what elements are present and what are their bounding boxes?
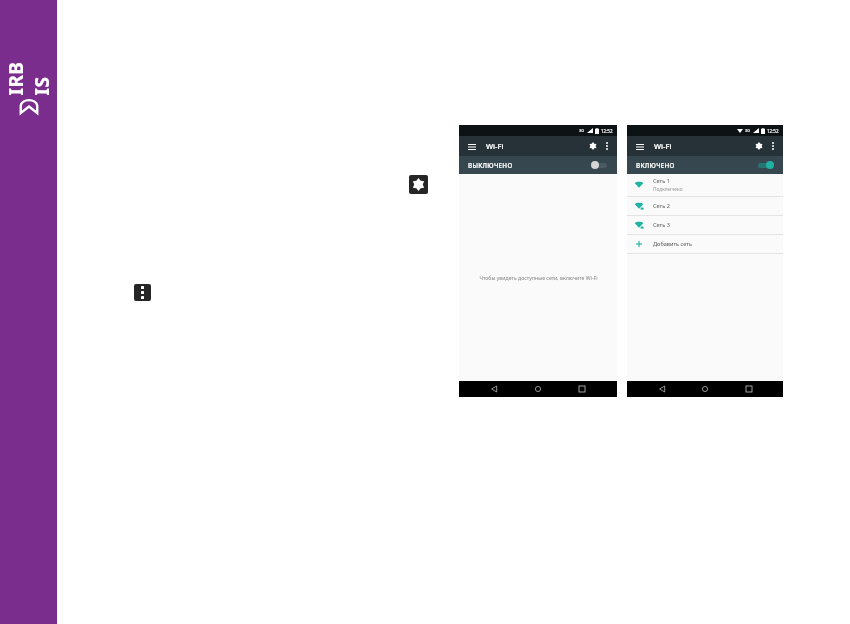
button[interactable]: Home (696, 381, 714, 397)
button[interactable]: Сеть 2 (627, 197, 783, 215)
button[interactable]: Back (653, 381, 671, 397)
button[interactable]: Open navigation drawer (465, 140, 478, 153)
button[interactable]: Recent apps (573, 381, 591, 397)
staticText: Wi-Fi (654, 141, 672, 151)
staticText: Сеть 3 (653, 221, 670, 229)
staticText: 12:52 (767, 128, 779, 134)
staticText: ВЫКЛЮЧЕНО (468, 161, 513, 170)
button[interactable]: Recent apps (740, 381, 758, 397)
staticText: Добавить сеть (653, 240, 692, 248)
button[interactable]: Back (485, 381, 503, 397)
button[interactable]: Добавить сеть (627, 235, 783, 253)
staticText: Wi-Fi (486, 141, 504, 151)
button[interactable]: Advanced Wi-Fi settings (586, 139, 600, 153)
button[interactable]: Home (529, 381, 547, 397)
button[interactable]: Сеть 3 (627, 216, 783, 234)
button[interactable]: Open navigation drawer (633, 140, 646, 153)
button[interactable]: More options (766, 139, 780, 153)
button[interactable]: More options (134, 284, 151, 301)
button[interactable]: ВЫКЛЮЧЕНО (459, 156, 617, 174)
staticText: 3G (745, 128, 751, 133)
button[interactable]: Advanced Wi-Fi settings (752, 139, 766, 153)
staticText: IRBIS (2, 56, 54, 95)
button[interactable]: Сеть 1 (627, 174, 783, 196)
staticText: Подключено (653, 186, 683, 193)
staticText: ВКЛЮЧЕНО (636, 161, 675, 170)
staticText: Сеть 2 (653, 202, 670, 210)
button[interactable]: Settings (409, 175, 428, 194)
staticText: 3G (579, 128, 585, 133)
staticText: Сеть 1 (653, 177, 670, 185)
staticText: 12:52 (601, 128, 613, 134)
button[interactable]: More options (600, 139, 614, 153)
staticText: Чтобы увидеть доступные сети, включите W… (479, 274, 598, 281)
button[interactable]: ВКЛЮЧЕНО (627, 156, 783, 174)
